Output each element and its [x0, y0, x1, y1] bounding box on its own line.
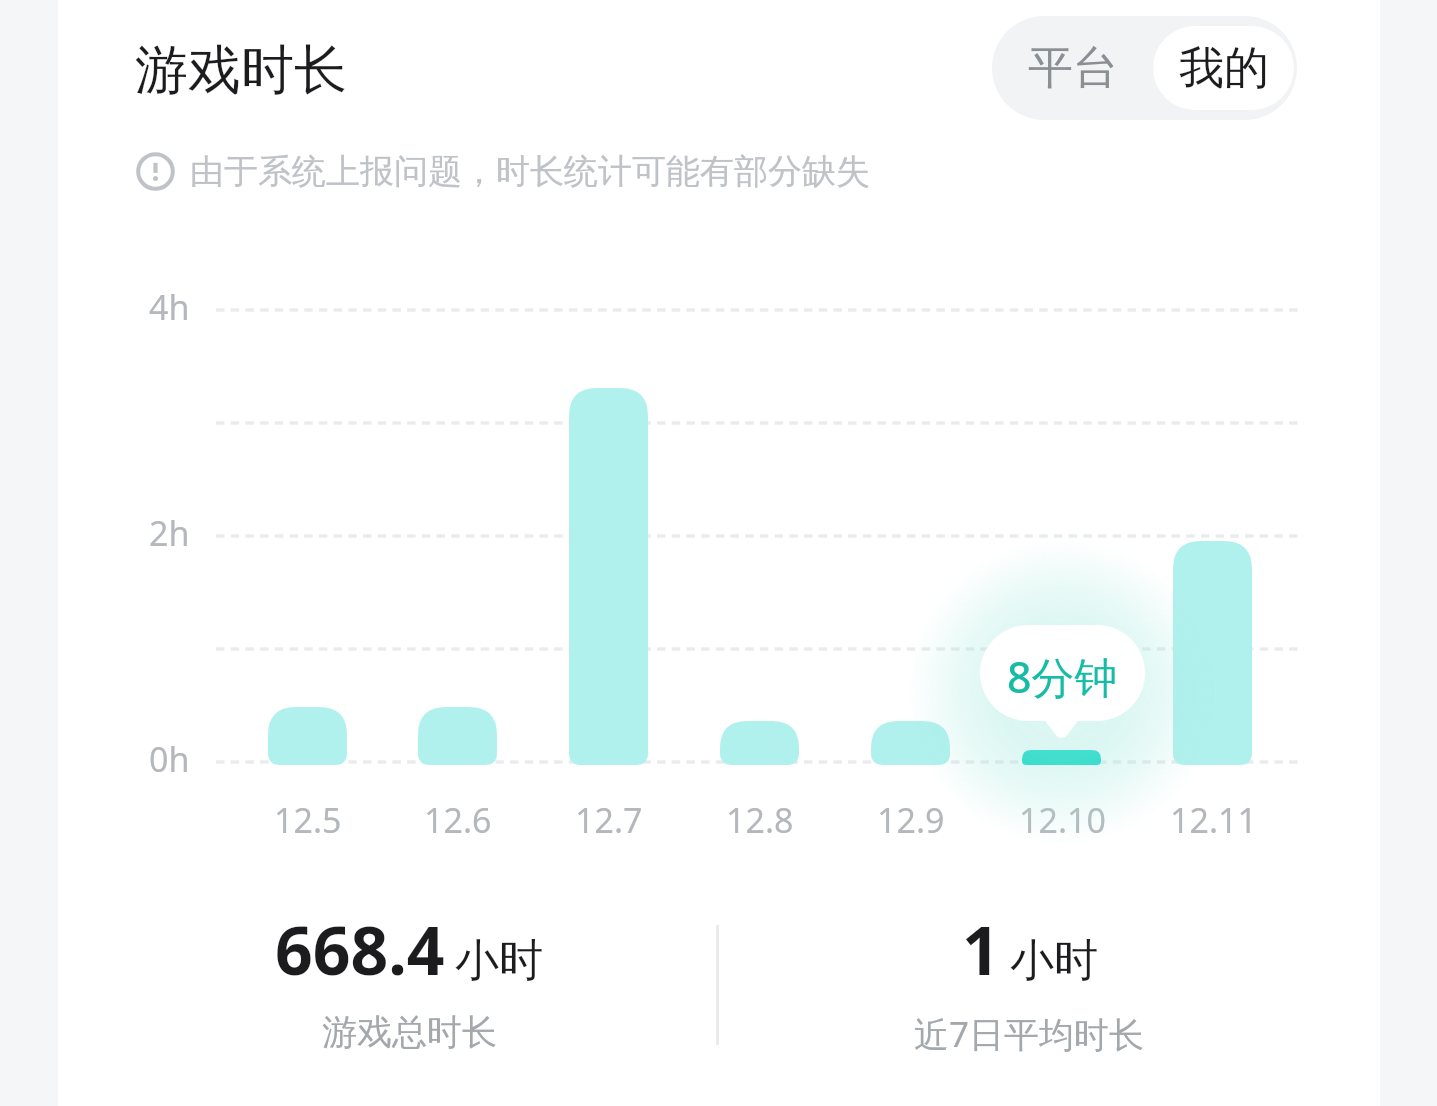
button[interactable]: 12.7 [539, 300, 678, 845]
staticText: 4h [149, 284, 190, 330]
staticText: 12.9 [877, 797, 945, 843]
button[interactable]: 我的 [1153, 26, 1294, 110]
staticText: 0h [149, 736, 190, 782]
other: Info [136, 152, 175, 191]
staticText: 668.4 [275, 904, 445, 994]
button[interactable]: 8分钟 [980, 625, 1145, 721]
staticText: 12.5 [274, 797, 342, 843]
staticText: 平台 [1028, 40, 1118, 97]
button[interactable]: 平台 [992, 16, 1153, 120]
staticText: 12.6 [424, 797, 492, 843]
staticText: 小时 [455, 933, 543, 988]
staticText: 近7日平均时长 [914, 1010, 1145, 1058]
staticText: 12.11 [1170, 797, 1257, 843]
staticText: 12.7 [575, 797, 643, 843]
staticText: 由于系统上报问题，时长统计可能有部分缺失 [190, 150, 870, 193]
staticText: 我的 [1179, 40, 1269, 97]
staticText: 游戏时长 [135, 37, 347, 104]
button[interactable]: 12.10 [992, 300, 1131, 845]
staticText: 小时 [1010, 933, 1098, 988]
staticText: 12.8 [726, 797, 794, 843]
button[interactable]: 12.8 [690, 300, 829, 845]
staticText: 2h [149, 510, 190, 556]
staticText: 1 [962, 904, 1000, 994]
button[interactable]: 12.11 [1143, 300, 1282, 845]
button[interactable]: 12.6 [388, 300, 527, 845]
staticText: 游戏总时长 [322, 1010, 497, 1054]
staticText: 12.10 [1019, 797, 1106, 843]
button[interactable]: 12.5 [238, 300, 377, 845]
button[interactable]: 12.9 [841, 300, 980, 845]
staticText: 8分钟 [1007, 647, 1118, 706]
